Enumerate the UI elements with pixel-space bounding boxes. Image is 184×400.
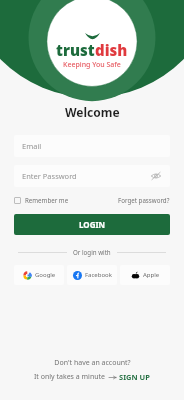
staticText: Apple [143,271,160,279]
staticText: Keeping You Safe [63,60,121,70]
button[interactable]: Show password [150,170,162,182]
button[interactable]: Google [14,265,64,285]
staticText: Google [35,271,56,279]
staticText: dish [95,40,128,60]
button[interactable]: Forget password? [118,196,170,204]
staticText: Facebook [85,271,112,279]
staticText: Email [22,141,42,151]
staticText: LOGIN [79,219,106,230]
staticText: trust [56,40,95,60]
button[interactable]: Apple [120,265,170,285]
staticText: Remember me [25,196,69,204]
button[interactable]: Email [14,135,170,157]
button[interactable]: Remember me [14,196,69,204]
staticText: It only takes a minute [34,372,106,382]
button[interactable]: Enter Password [14,165,170,187]
staticText: Don't have an account? [54,358,131,368]
staticText: Welcome [65,104,120,120]
button[interactable]: SIGN UP [119,372,150,382]
button[interactable]: LOGIN [14,214,170,235]
staticText: Enter Password [22,171,77,181]
button[interactable]: Facebook [67,265,117,285]
staticText: Or login with [73,248,111,256]
